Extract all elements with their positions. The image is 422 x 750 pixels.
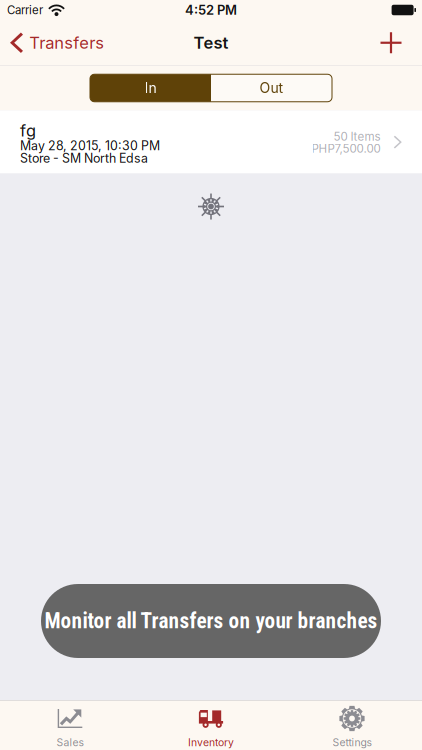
staticText: Sales bbox=[56, 736, 83, 749]
button[interactable]: Add transfer bbox=[369, 21, 413, 65]
button[interactable]: Inventory bbox=[140, 700, 282, 750]
button[interactable]: Sales bbox=[0, 700, 140, 750]
staticText: 4:52 PM bbox=[185, 2, 237, 18]
button[interactable]: Out bbox=[211, 74, 332, 102]
staticText: May 28, 2015, 10:30 PM bbox=[20, 138, 160, 153]
staticText: Out bbox=[259, 79, 283, 96]
staticText: PHP7,500.00 bbox=[312, 141, 381, 155]
button[interactable]: Transfers bbox=[0, 21, 112, 65]
staticText: Carrier bbox=[7, 3, 43, 17]
staticText: Transfers bbox=[29, 33, 104, 53]
staticText: Store - SM North Edsa bbox=[20, 151, 148, 166]
button[interactable]: In bbox=[90, 74, 211, 102]
staticText: Settings bbox=[332, 736, 371, 749]
button[interactable]: fg bbox=[0, 110, 422, 173]
staticText: In bbox=[144, 79, 156, 96]
staticText: 50 Items bbox=[334, 129, 381, 143]
staticText: Monitor all Transfers on your branches bbox=[44, 608, 377, 633]
staticText: Inventory bbox=[188, 736, 234, 749]
staticText: fg bbox=[20, 121, 36, 140]
button[interactable]: Settings bbox=[282, 700, 422, 750]
staticText: Test bbox=[193, 33, 228, 53]
